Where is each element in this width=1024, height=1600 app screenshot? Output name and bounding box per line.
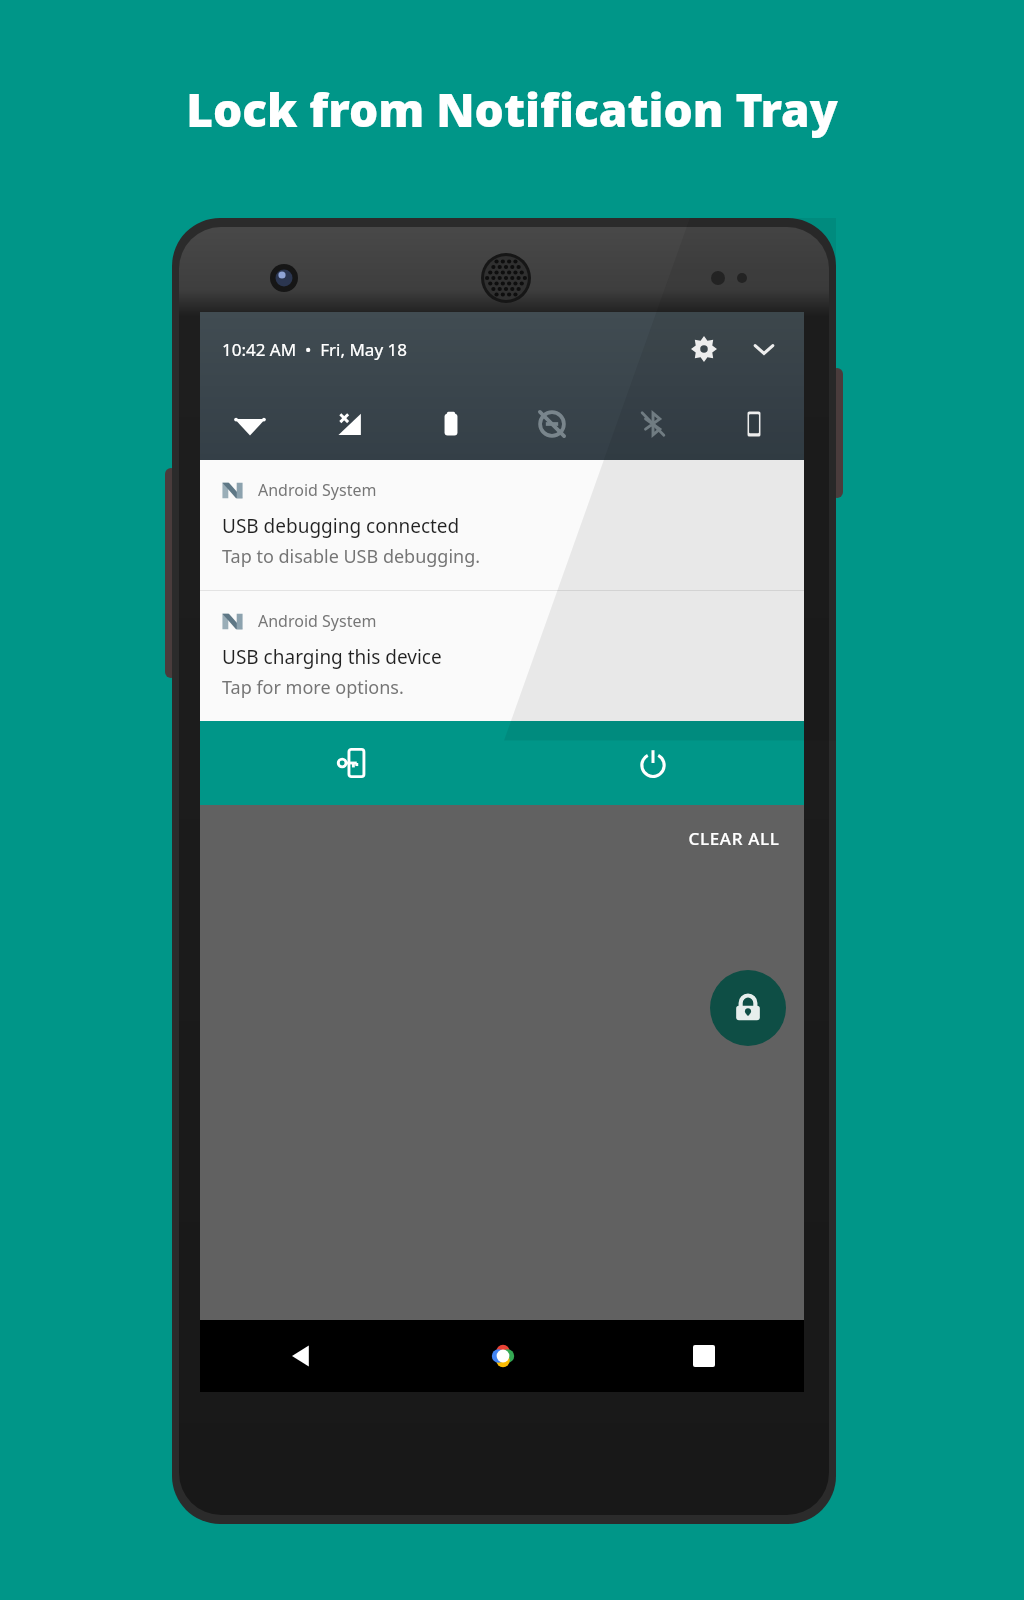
staticText: Tap to disable USB debugging. xyxy=(222,544,481,569)
staticText: 10:42 AM • Fri, May 18 xyxy=(222,338,407,361)
button[interactable]: Settings xyxy=(680,325,728,373)
button[interactable]: CLEAR ALL xyxy=(674,817,794,860)
button[interactable]: Auto rotate xyxy=(703,388,804,460)
button[interactable]: Expand quick settings xyxy=(740,325,788,373)
button[interactable]: Lock xyxy=(710,970,786,1046)
button[interactable]: Bluetooth xyxy=(602,388,703,460)
button[interactable]: Home xyxy=(402,1320,603,1392)
staticText: Android System xyxy=(258,479,377,501)
button[interactable]: Recents xyxy=(603,1320,804,1392)
staticText: Lock from Notification Tray xyxy=(186,78,838,141)
button[interactable]: Mobile signal xyxy=(300,388,400,460)
button[interactable]: Battery xyxy=(400,388,501,460)
staticText: CLEAR ALL xyxy=(688,827,780,850)
button[interactable]: Android System xyxy=(200,591,804,721)
button[interactable]: Do not disturb xyxy=(501,388,602,460)
button[interactable]: Android System xyxy=(200,460,804,590)
staticText: USB charging this device xyxy=(222,644,442,670)
staticText: Android System xyxy=(258,610,377,632)
button[interactable]: Power xyxy=(502,721,804,805)
staticText: Tap for more options. xyxy=(222,675,404,700)
button[interactable]: Lock screen xyxy=(200,721,502,805)
staticText: USB debugging connected xyxy=(222,513,460,539)
button[interactable]: Wi-Fi xyxy=(200,388,300,460)
button[interactable]: Back xyxy=(200,1320,402,1392)
